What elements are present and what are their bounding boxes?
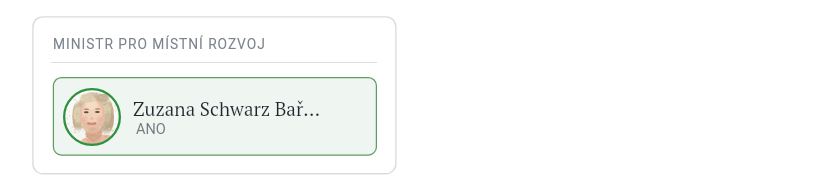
button[interactable]: Portrét: Zuzana Schwarz Bařtipánová	[53, 77, 377, 156]
staticText: Zuzana Schwarz Bař...	[133, 96, 321, 121]
other: Portrét: Zuzana Schwarz Bařtipánová	[63, 88, 121, 146]
staticText: ANO	[136, 121, 166, 138]
staticText: MINISTR PRO MÍSTNÍ ROZVOJ	[53, 36, 266, 52]
